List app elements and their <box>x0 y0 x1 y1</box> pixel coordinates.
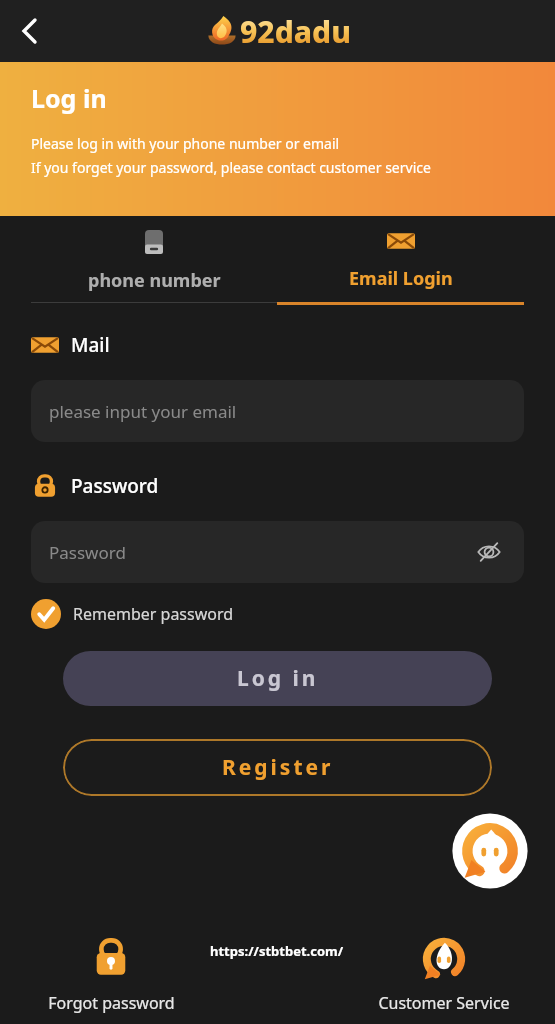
staticText: Email Login <box>349 266 453 291</box>
button[interactable]: Password <box>31 521 524 583</box>
staticText: Customer Service <box>378 992 510 1014</box>
button[interactable]: Customer Service <box>352 937 535 1014</box>
staticText: Register <box>222 753 334 782</box>
button[interactable]: phone number <box>31 216 277 302</box>
staticText: please input your email <box>49 400 506 423</box>
staticText: Mail <box>71 332 110 358</box>
staticText: Remember password <box>73 603 234 625</box>
button[interactable]: Log in <box>63 651 492 706</box>
button[interactable]: Email Login <box>277 216 524 300</box>
button[interactable]: Back <box>6 7 54 55</box>
staticText: Forgot password <box>48 992 175 1014</box>
staticText: 92dadu <box>240 11 351 52</box>
staticText: Log in <box>31 81 107 115</box>
staticText: Please log in with your phone number or … <box>31 134 340 153</box>
button[interactable]: please input your email <box>31 380 524 442</box>
button[interactable]: Register <box>63 739 492 796</box>
staticText: Log in <box>237 664 319 693</box>
staticText: https://stbtbet.com/ <box>210 942 344 960</box>
button[interactable]: Show password <box>472 535 506 569</box>
button[interactable]: Remember password <box>31 599 234 629</box>
staticText: Password <box>49 541 472 564</box>
button[interactable]: Forgot password <box>20 937 202 1014</box>
staticText: phone number <box>88 268 221 293</box>
staticText: Password <box>71 473 159 499</box>
button[interactable]: Customer service chat <box>450 811 530 891</box>
staticText: If you forget your password, please cont… <box>31 158 431 177</box>
